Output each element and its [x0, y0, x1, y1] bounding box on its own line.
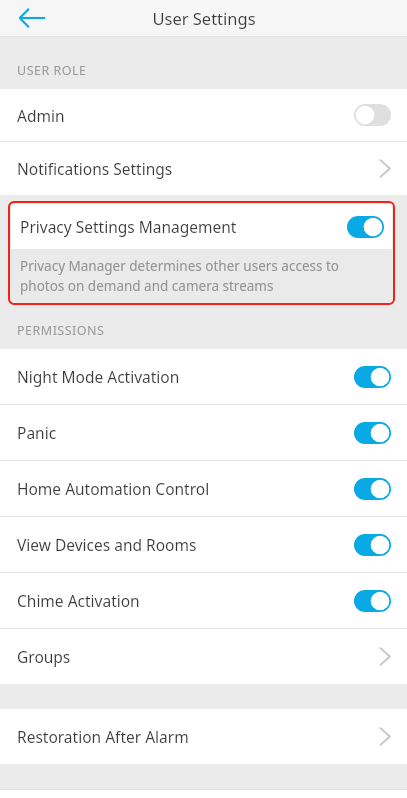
staticText: Home Automation Control	[17, 478, 354, 499]
staticText: Night Mode Activation	[17, 366, 354, 387]
button[interactable]: Privacy Settings Management	[11, 204, 392, 249]
staticText: Notifications Settings	[17, 158, 379, 179]
staticText: PERMISSIONS	[17, 322, 105, 339]
button[interactable]: Panic	[0, 405, 407, 460]
staticText: Chime Activation	[17, 590, 354, 611]
button[interactable]: Night Mode Activation	[0, 349, 407, 404]
button[interactable]: Back	[16, 2, 48, 34]
button[interactable]: Notifications Settings	[0, 142, 407, 195]
button[interactable]: Admin	[0, 89, 407, 141]
staticText: USER ROLE	[17, 62, 87, 79]
button[interactable]: Groups	[0, 629, 407, 684]
staticText: Restoration After Alarm	[17, 726, 379, 747]
button[interactable]: Restoration After Alarm	[0, 709, 407, 764]
button[interactable]: Chime Activation	[0, 573, 407, 628]
staticText: Groups	[17, 646, 379, 667]
staticText: Privacy Settings Management	[20, 216, 347, 237]
button[interactable]: View Devices and Rooms	[0, 517, 407, 572]
staticText: Admin	[17, 105, 354, 126]
staticText: View Devices and Rooms	[17, 534, 354, 555]
staticText: Privacy Manager determines other users a…	[20, 257, 386, 295]
staticText: User Settings	[152, 7, 256, 29]
button[interactable]: Home Automation Control	[0, 461, 407, 516]
staticText: Panic	[17, 422, 354, 443]
